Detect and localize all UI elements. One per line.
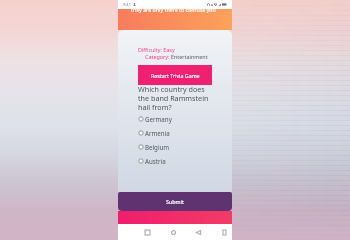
button[interactable]: Germany bbox=[138, 112, 212, 126]
staticText: they are only there to confuse you bbox=[131, 6, 216, 13]
button[interactable]: Recent apps bbox=[142, 227, 152, 237]
staticText: Entertainment bbox=[171, 53, 208, 60]
staticText: Category: bbox=[145, 53, 171, 60]
staticText: Armenia bbox=[145, 129, 170, 137]
staticText: Austria bbox=[145, 157, 166, 165]
button[interactable]: Home bbox=[168, 227, 178, 237]
button[interactable]: Restart Trivia Game bbox=[138, 65, 212, 85]
button[interactable]: Austria bbox=[138, 154, 212, 168]
staticText: 9:41 bbox=[123, 2, 131, 7]
staticText: Difficulty: Easy bbox=[138, 46, 175, 53]
button[interactable]: Keyboard bbox=[219, 227, 229, 237]
staticText: Which country does the band Rammstein ha… bbox=[138, 84, 212, 112]
staticText: Belgium bbox=[145, 143, 170, 151]
staticText: Restart Trivia Game bbox=[151, 72, 200, 79]
staticText: Germany bbox=[145, 115, 172, 123]
button[interactable]: Back bbox=[193, 227, 203, 237]
button[interactable]: Belgium bbox=[138, 140, 212, 154]
staticText: Submit bbox=[166, 198, 184, 205]
button[interactable]: Armenia bbox=[138, 126, 212, 140]
button[interactable]: Submit bbox=[118, 192, 232, 211]
